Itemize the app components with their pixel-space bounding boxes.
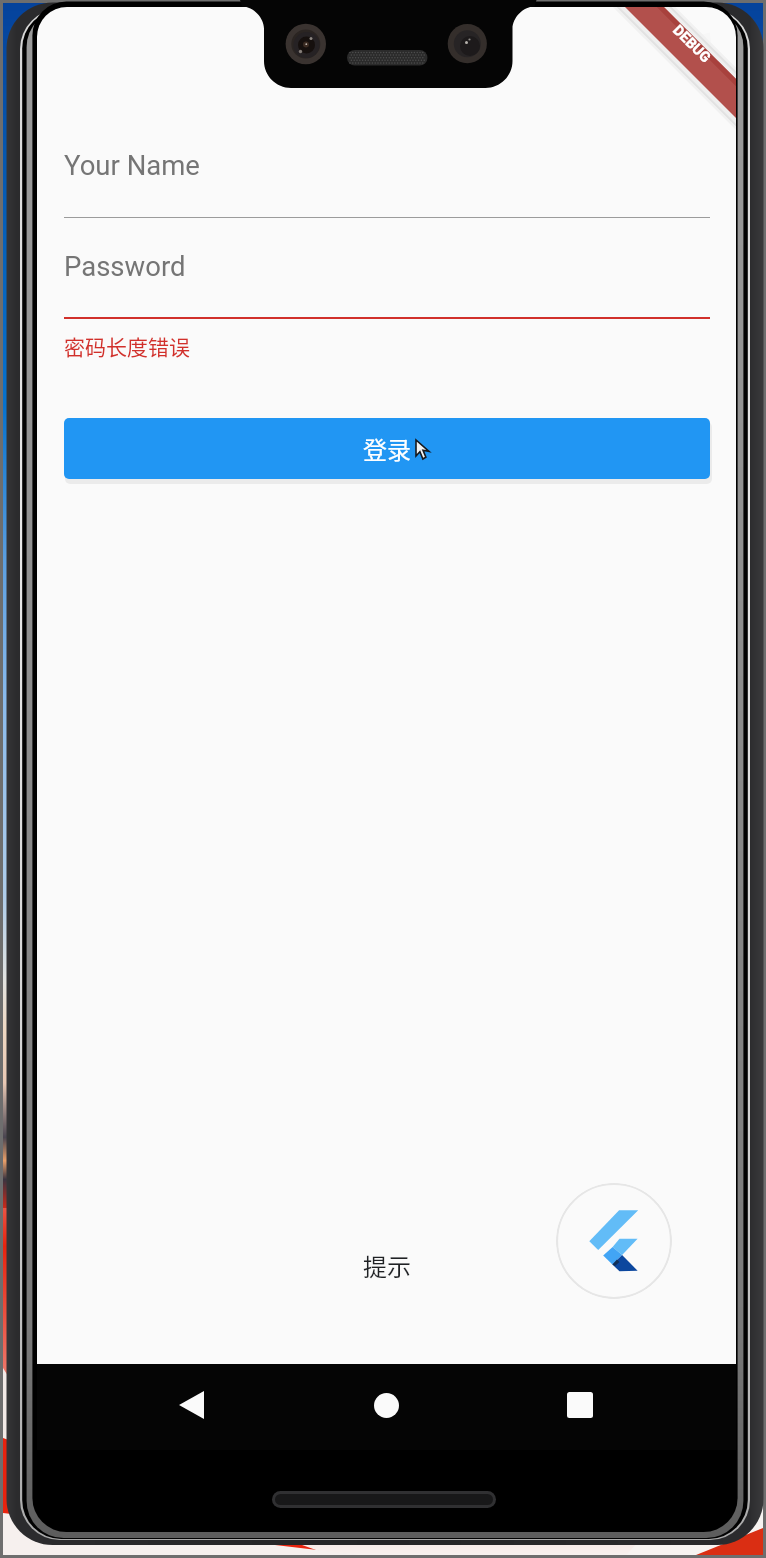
button[interactable]: 登录	[64, 418, 710, 479]
staticText: Password	[64, 250, 186, 282]
button[interactable]: Recents	[550, 1375, 610, 1435]
button[interactable]: Home	[356, 1375, 416, 1435]
staticText: 密码长度错误	[64, 331, 190, 361]
staticText: DEBUG	[670, 22, 715, 66]
button[interactable]: Flutter	[556, 1183, 672, 1299]
button[interactable]: Password	[64, 214, 710, 319]
button[interactable]: Your Name	[64, 113, 710, 218]
staticText: 登录	[363, 431, 411, 466]
button[interactable]: 提示	[363, 1248, 411, 1283]
button[interactable]: Back	[161, 1375, 221, 1435]
staticText: Your Name	[64, 149, 200, 181]
